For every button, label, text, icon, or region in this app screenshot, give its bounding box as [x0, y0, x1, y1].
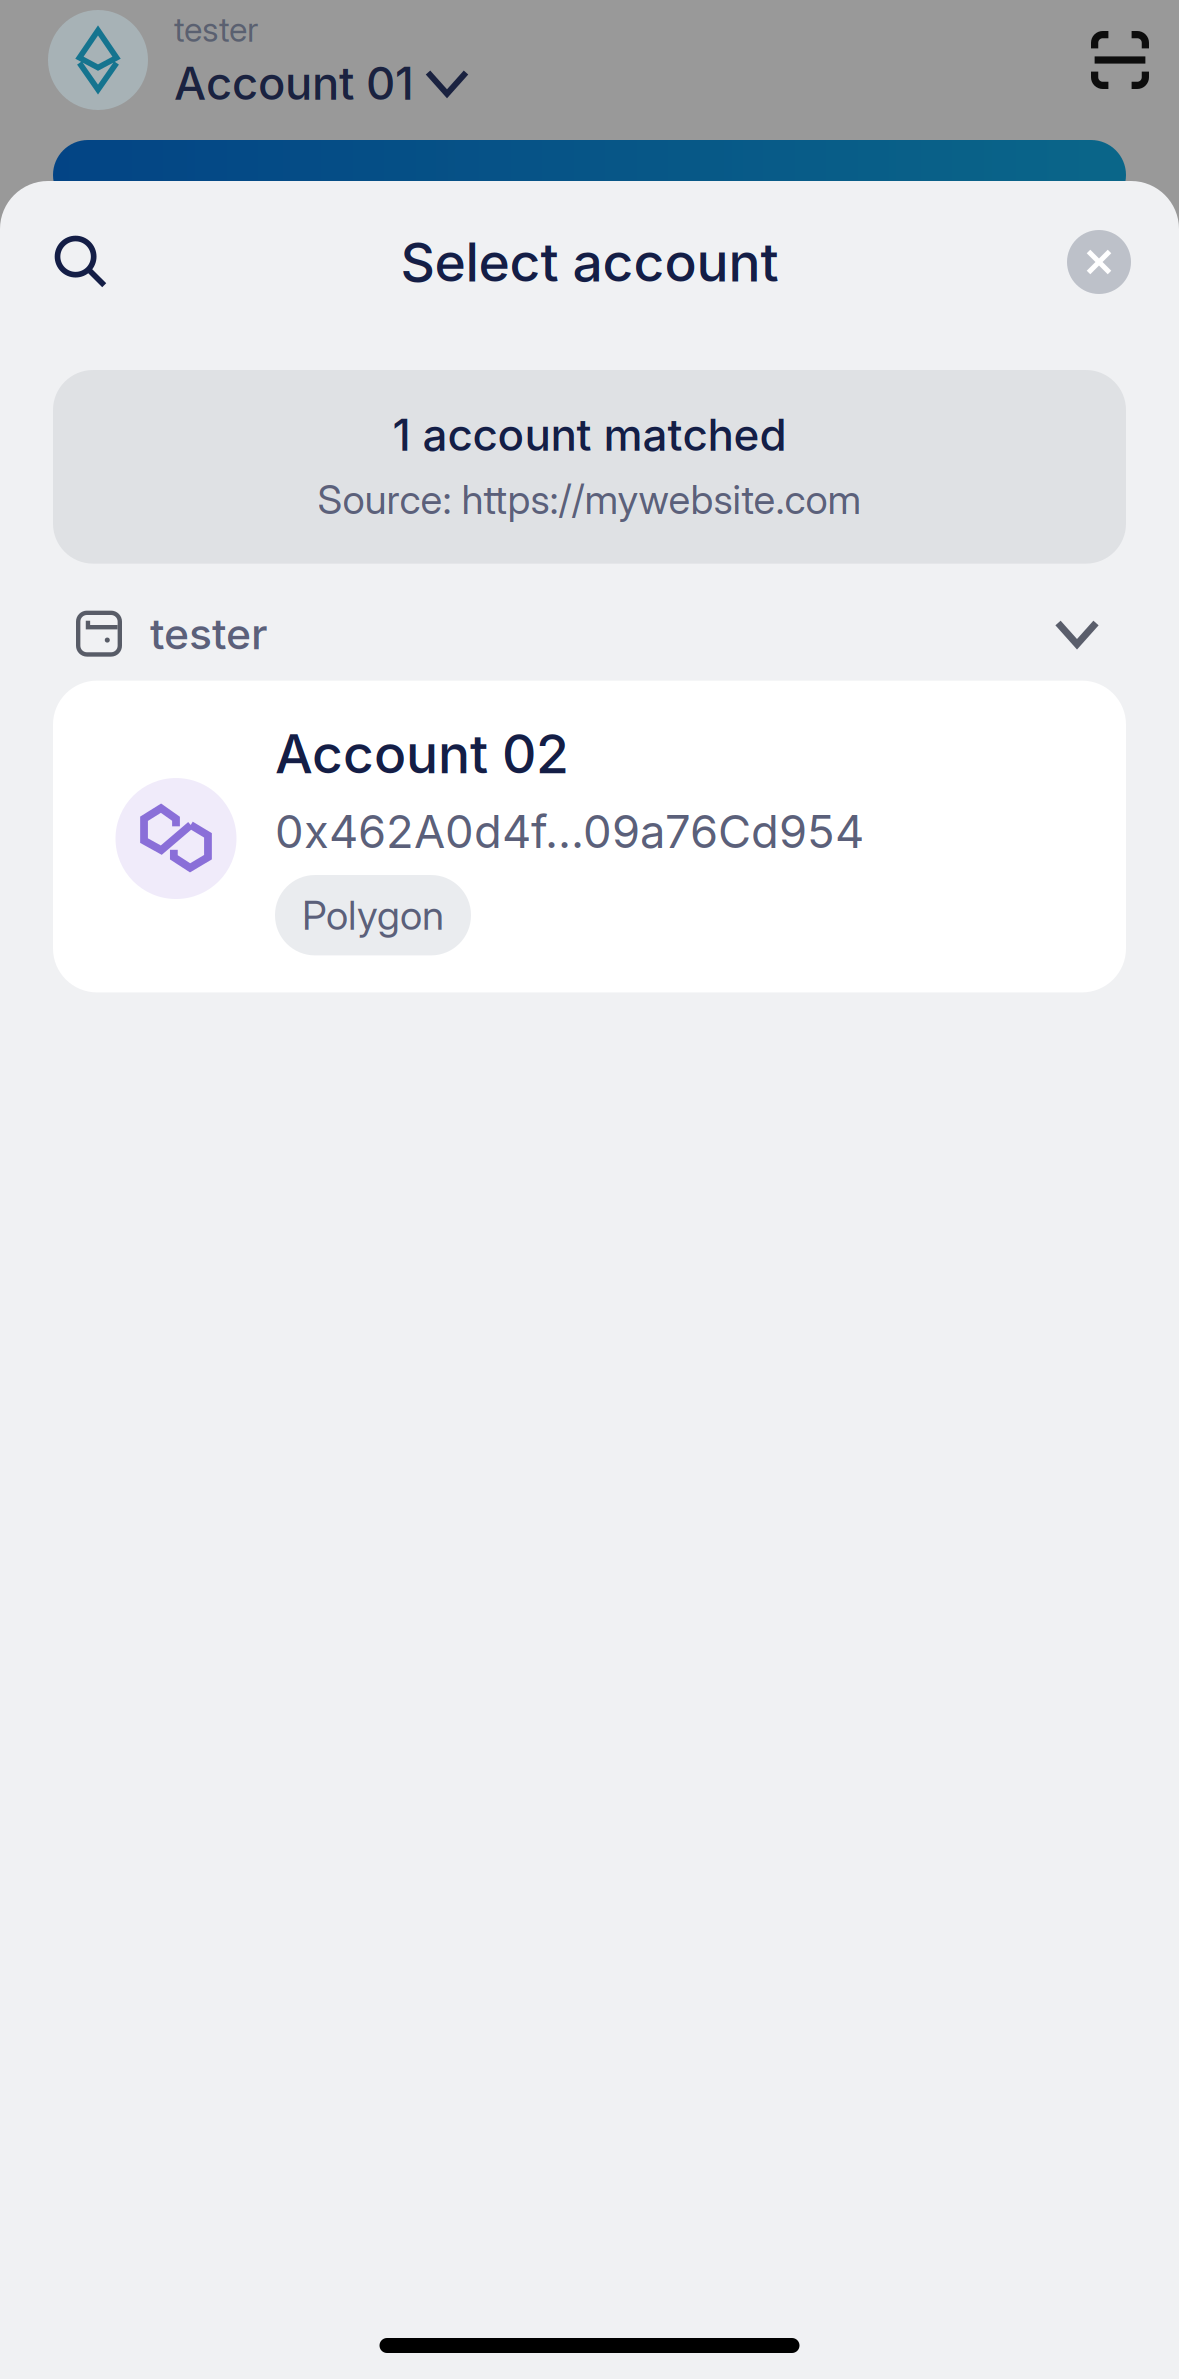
staticText: 0x462A0d4f...09a76Cd954: [275, 804, 864, 859]
button[interactable]: tester: [0, 587, 1179, 681]
button[interactable]: Search: [38, 219, 124, 305]
staticText: Select account: [400, 230, 778, 294]
staticText: Polygon: [302, 891, 444, 939]
staticText: tester: [150, 608, 268, 659]
staticText: tester: [174, 9, 258, 50]
button[interactable]: Account 02: [0, 681, 1179, 992]
staticText: Account 01: [174, 56, 414, 111]
button[interactable]: Close: [1056, 219, 1142, 305]
staticText: Account 02: [275, 722, 569, 786]
staticText: Source: https://mywebsite.com: [317, 475, 861, 524]
staticText: 1 account matched: [392, 408, 786, 461]
